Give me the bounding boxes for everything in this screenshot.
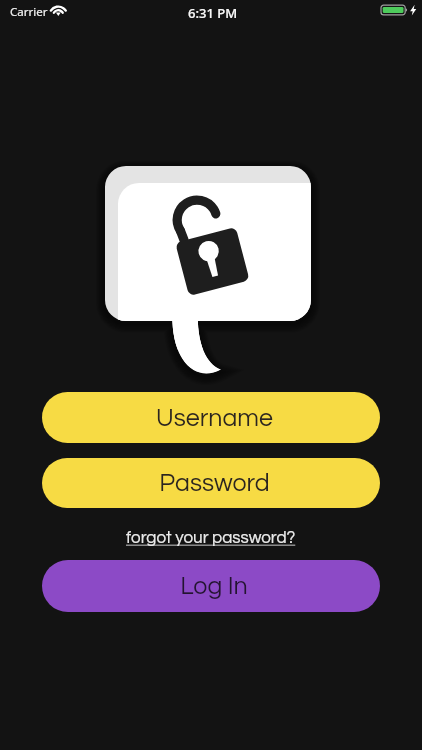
other: Status icons: Wi-Fi, battery, charging	[0, 0, 422, 22]
staticText: Password	[159, 470, 270, 496]
button[interactable]: Log In	[42, 560, 380, 612]
button[interactable]: Username	[42, 392, 380, 443]
staticText: Carrier	[10, 4, 48, 20]
staticText: 6:31 PM	[188, 4, 238, 22]
staticText: Log In	[180, 573, 248, 599]
staticText: Username	[156, 405, 273, 431]
button[interactable]: forgot your password?	[120, 526, 302, 550]
button[interactable]: Password	[42, 458, 380, 508]
